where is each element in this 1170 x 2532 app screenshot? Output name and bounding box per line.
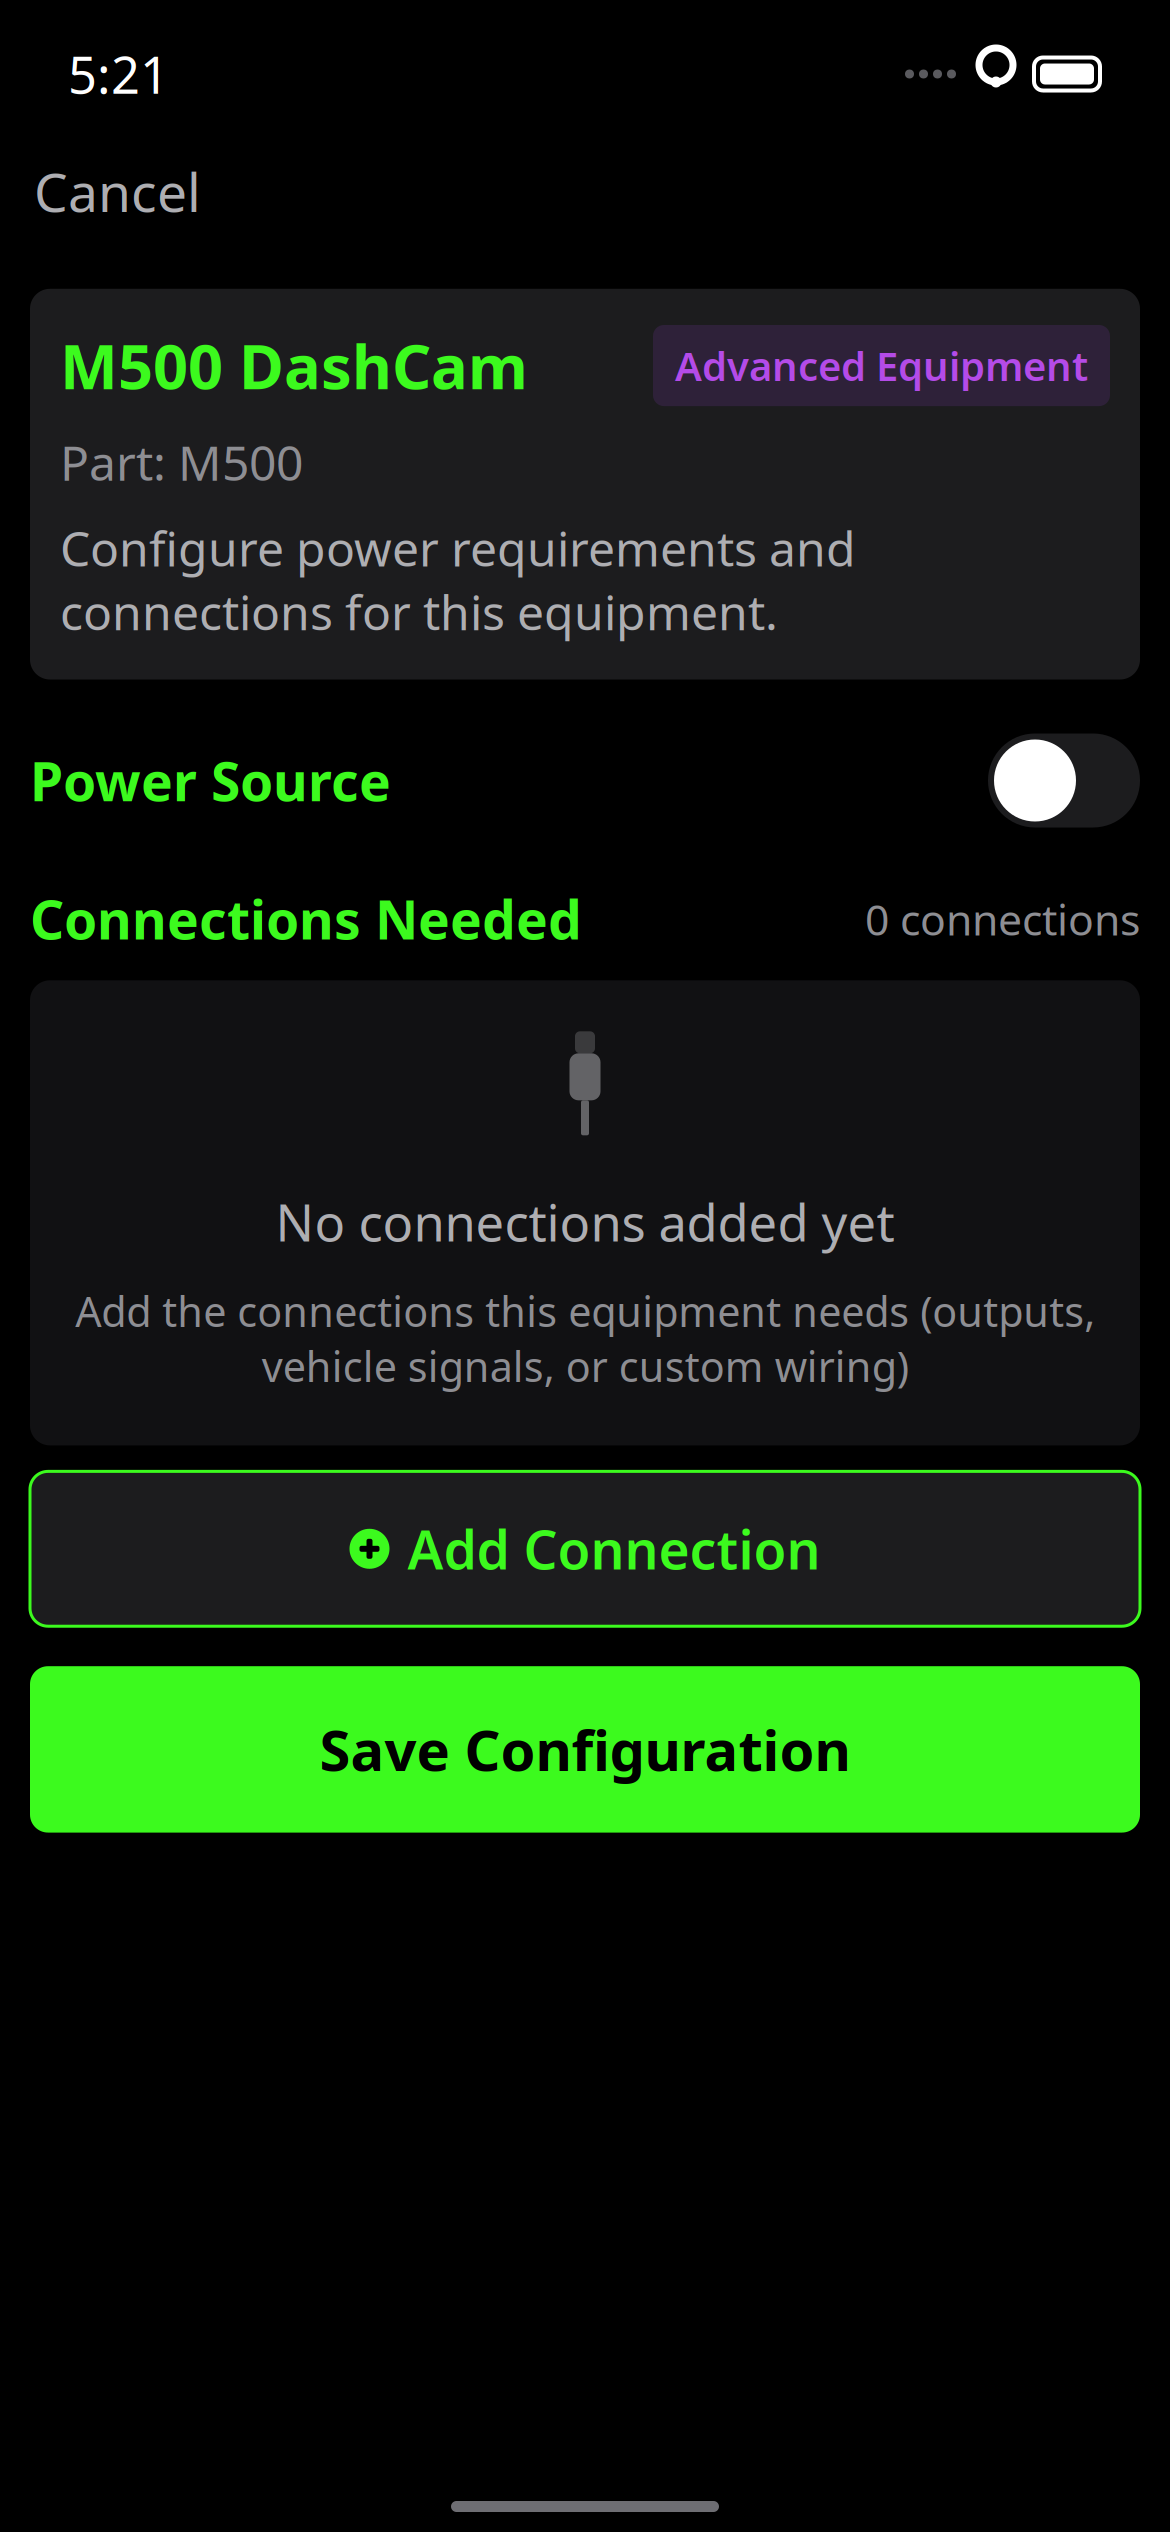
button[interactable]: Power Source	[0, 719, 1170, 841]
staticText: 0 connections	[865, 891, 1140, 947]
staticText: Configure power requirements and connect…	[60, 516, 856, 643]
staticText: Save Configuration	[319, 1712, 850, 1787]
button[interactable]: Add Connection	[30, 1471, 1140, 1626]
staticText: Advanced Equipment	[675, 339, 1088, 392]
button[interactable]: Cancel	[30, 142, 205, 241]
staticText: 5:21	[68, 40, 169, 108]
staticText: M500 DashCam	[60, 325, 528, 406]
staticText: Connections Needed	[30, 883, 582, 954]
button[interactable]: Save Configuration	[30, 1666, 1140, 1833]
staticText: Add the connections this equipment needs…	[75, 1284, 1095, 1393]
staticText: Part: M500	[60, 430, 303, 494]
staticText: Power Source	[30, 745, 391, 816]
staticText: Add Connection	[407, 1513, 820, 1584]
staticText: No connections added yet	[275, 1188, 894, 1256]
staticText: Cancel	[34, 156, 201, 227]
